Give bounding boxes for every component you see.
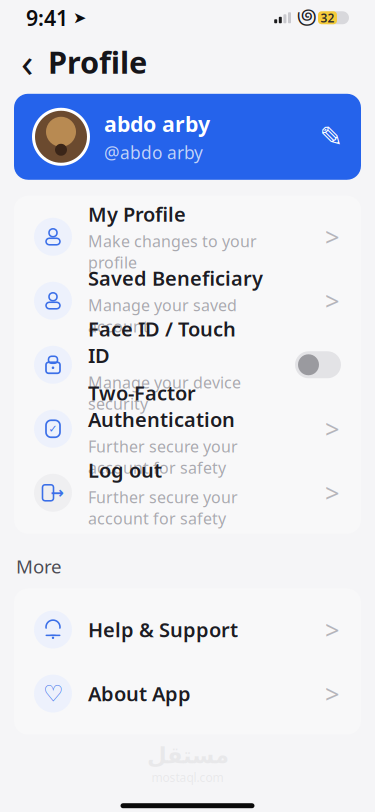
staticText: > xyxy=(325,412,339,446)
button[interactable]: Back xyxy=(16,45,38,79)
staticText: > xyxy=(325,284,339,318)
staticText: > xyxy=(325,613,339,646)
staticText: Two-Factor Authentication xyxy=(88,379,235,433)
button[interactable]: ✓ xyxy=(14,397,361,461)
staticText: ✎ xyxy=(319,121,342,153)
staticText: ♡ xyxy=(43,681,63,706)
staticText: > xyxy=(325,677,339,710)
staticText: Saved Beneficiary xyxy=(88,265,263,291)
staticText: Log out xyxy=(88,457,162,483)
staticText: Make changes to your profile xyxy=(88,230,257,273)
button[interactable]: Face ID / Touch ID xyxy=(14,333,361,397)
staticText: Profile xyxy=(48,41,147,82)
staticText: More xyxy=(16,554,62,579)
button[interactable]: My Profile xyxy=(14,205,361,269)
staticText: Face ID / Touch ID xyxy=(88,315,236,369)
staticText: Help & Support xyxy=(88,616,238,643)
staticText: ‹ xyxy=(21,35,33,88)
staticText: 9:41 xyxy=(26,4,68,32)
button[interactable]: abdo arby xyxy=(14,94,361,180)
staticText: → xyxy=(50,484,63,502)
button[interactable]: Saved Beneficiary xyxy=(14,269,361,333)
staticText: ➤ xyxy=(73,9,86,27)
staticText: Manage your device security xyxy=(88,372,241,414)
staticText: ✓ xyxy=(48,423,57,435)
staticText: abdo arby xyxy=(104,110,210,138)
button[interactable]: Help & Support xyxy=(14,598,361,662)
button[interactable]: → xyxy=(14,461,361,525)
staticText: > xyxy=(325,476,339,510)
staticText: 32 xyxy=(320,10,334,26)
staticText: Further secure your account for safety xyxy=(88,486,238,529)
staticText: Further secure your account for safety xyxy=(88,436,238,478)
staticText: مستقل xyxy=(146,743,228,768)
staticText: @abdo arby xyxy=(104,141,203,164)
button[interactable]: ♡ xyxy=(14,662,361,726)
staticText: mostaql.com xyxy=(151,769,223,785)
staticText: > xyxy=(325,220,339,254)
staticText: Manage your saved account xyxy=(88,294,237,337)
staticText: ౷ xyxy=(297,5,316,30)
staticText: About App xyxy=(88,680,191,707)
button[interactable]: Face ID / Touch ID toggle, off xyxy=(295,351,341,378)
staticText: My Profile xyxy=(88,201,186,227)
